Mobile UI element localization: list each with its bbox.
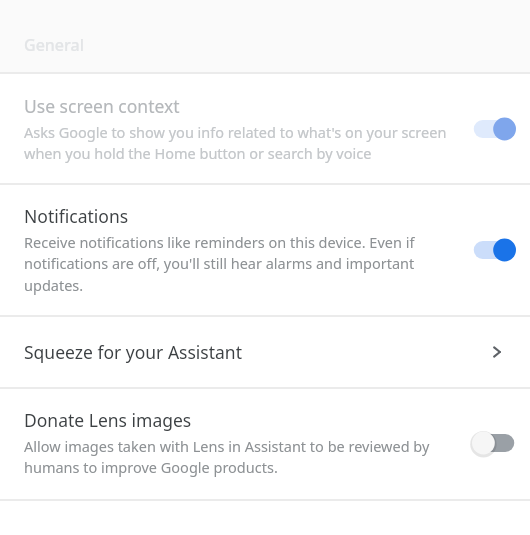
button[interactable]: Use screen context — [0, 74, 530, 183]
staticText: Asks Google to show you info related to … — [24, 122, 458, 163]
staticText: General — [24, 34, 84, 56]
staticText: Squeeze for your Assistant — [24, 340, 488, 364]
other: Open Squeeze for your Assistant — [488, 343, 506, 361]
staticText: Notifications — [24, 204, 129, 228]
button[interactable]: Notifications — [0, 185, 530, 315]
staticText: Use screen context — [24, 94, 180, 118]
button[interactable]: Donate Lens images — [0, 389, 530, 499]
staticText: Donate Lens images — [24, 408, 192, 432]
staticText: Receive notifications like reminders on … — [24, 232, 458, 295]
button[interactable]: Squeeze for your Assistant — [0, 317, 530, 387]
staticText: Allow images taken with Lens in Assistan… — [24, 436, 458, 477]
